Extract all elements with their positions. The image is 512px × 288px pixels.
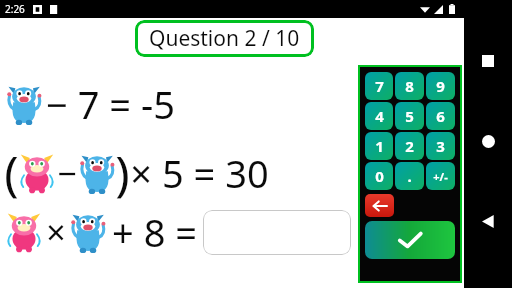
staticText: 6 — [436, 106, 445, 126]
staticText: 1 — [375, 136, 384, 156]
button[interactable]: 7 — [365, 72, 393, 100]
staticText: 2:26 — [5, 2, 25, 16]
button[interactable]: Backspace — [365, 194, 394, 217]
staticText: 4 — [375, 106, 384, 126]
button[interactable]: Recent apps — [477, 50, 499, 72]
staticText: × — [46, 209, 66, 255]
button[interactable]: 2 — [395, 132, 424, 160]
staticText: 0 — [375, 166, 384, 186]
staticText: + 8 = — [112, 206, 197, 258]
button[interactable]: Answer input — [203, 210, 351, 255]
button[interactable]: +/- — [426, 162, 455, 190]
staticText: +/- — [433, 169, 448, 184]
staticText: Question 2 / 10 — [149, 24, 300, 53]
button[interactable]: Home — [477, 130, 499, 152]
button[interactable]: 1 — [365, 132, 393, 160]
staticText: × 5 = 30 — [130, 147, 269, 199]
button[interactable]: 0 — [365, 162, 393, 190]
button[interactable]: Back — [477, 210, 499, 232]
staticText: . — [407, 166, 412, 186]
staticText: 8 — [405, 76, 414, 96]
staticText: 3 — [436, 136, 445, 156]
button[interactable]: . — [395, 162, 424, 190]
staticText: ( — [4, 140, 19, 205]
button[interactable]: 9 — [426, 72, 455, 100]
staticText: 2 — [405, 136, 414, 156]
button[interactable]: 5 — [395, 102, 424, 130]
staticText: 9 — [436, 76, 445, 96]
button[interactable]: 8 — [395, 72, 424, 100]
staticText: − — [57, 150, 77, 196]
staticText: 5 — [405, 106, 414, 126]
button[interactable]: 3 — [426, 132, 455, 160]
button[interactable]: Submit answer — [365, 221, 455, 259]
button[interactable]: 4 — [365, 102, 393, 130]
staticText: 7 — [375, 76, 384, 96]
button[interactable]: Question 2 / 10 — [135, 20, 314, 57]
button[interactable]: 6 — [426, 102, 455, 130]
staticText: ) — [115, 140, 130, 205]
staticText: − 7 = -5 — [46, 78, 175, 130]
